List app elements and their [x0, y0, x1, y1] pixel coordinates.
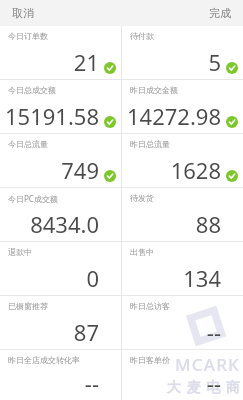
staticText: 昨日成交金额	[130, 85, 178, 95]
button[interactable]: 今日PC成交额	[0, 188, 121, 241]
staticText: --	[84, 368, 99, 398]
staticText: 取消	[12, 6, 34, 20]
staticText: 大 麦 电 商	[167, 377, 241, 396]
staticText: 昨日客单价	[130, 355, 170, 365]
button[interactable]: 昨日全店成交转化率	[0, 350, 121, 400]
staticText: --	[206, 368, 221, 398]
other: 已完成	[226, 116, 238, 128]
button[interactable]: 今日总成交额	[0, 80, 121, 133]
staticText: 昨日总访客	[130, 301, 170, 311]
staticText: 今日总成交额	[8, 85, 56, 95]
button[interactable]: 昨日总访客	[122, 296, 243, 349]
staticText: 134	[183, 263, 221, 293]
button[interactable]: 完成	[197, 0, 243, 26]
staticText: 昨日全店成交转化率	[8, 355, 80, 365]
staticText: --	[206, 317, 221, 347]
other: 已完成	[104, 170, 116, 182]
other: 已完成	[226, 62, 238, 74]
staticText: 完成	[209, 6, 231, 20]
button[interactable]: 出售中	[122, 242, 243, 295]
button[interactable]: 今日订单数	[0, 26, 121, 79]
staticText: 待付款	[130, 31, 154, 41]
button[interactable]: 待发货	[122, 188, 243, 241]
other: 已完成	[226, 170, 238, 182]
other: 已完成	[104, 116, 116, 128]
button[interactable]: 昨日成交金额	[122, 80, 243, 133]
button[interactable]: 待付款	[122, 26, 243, 79]
staticText: 今日订单数	[8, 31, 48, 41]
staticText: 5	[208, 47, 221, 77]
staticText: 0	[86, 263, 99, 293]
button[interactable]: 昨日客单价	[122, 350, 243, 400]
other: 已完成	[104, 62, 116, 74]
staticText: 出售中	[130, 247, 154, 257]
staticText: 15191.58	[5, 101, 99, 131]
staticText: 退款中	[8, 247, 32, 257]
staticText: MCARK	[175, 353, 241, 376]
staticText: 待发货	[130, 193, 154, 203]
staticText: 21	[73, 47, 99, 77]
staticText: 749	[61, 155, 99, 185]
button[interactable]: 取消	[0, 0, 46, 26]
button[interactable]: 昨日总流量	[122, 134, 243, 187]
button[interactable]: 已橱窗推荐	[0, 296, 121, 349]
staticText: 昨日总流量	[130, 139, 170, 149]
button[interactable]: 退款中	[0, 242, 121, 295]
staticText: 1628	[170, 155, 221, 185]
staticText: 87	[73, 317, 99, 347]
staticText: 已橱窗推荐	[8, 301, 48, 311]
staticText: 今日总流量	[8, 139, 48, 149]
staticText: 88	[195, 209, 221, 239]
staticText: 14272.98	[127, 101, 221, 131]
button[interactable]: 今日总流量	[0, 134, 121, 187]
staticText: 8434.0	[30, 209, 99, 239]
staticText: 今日PC成交额	[8, 193, 58, 204]
